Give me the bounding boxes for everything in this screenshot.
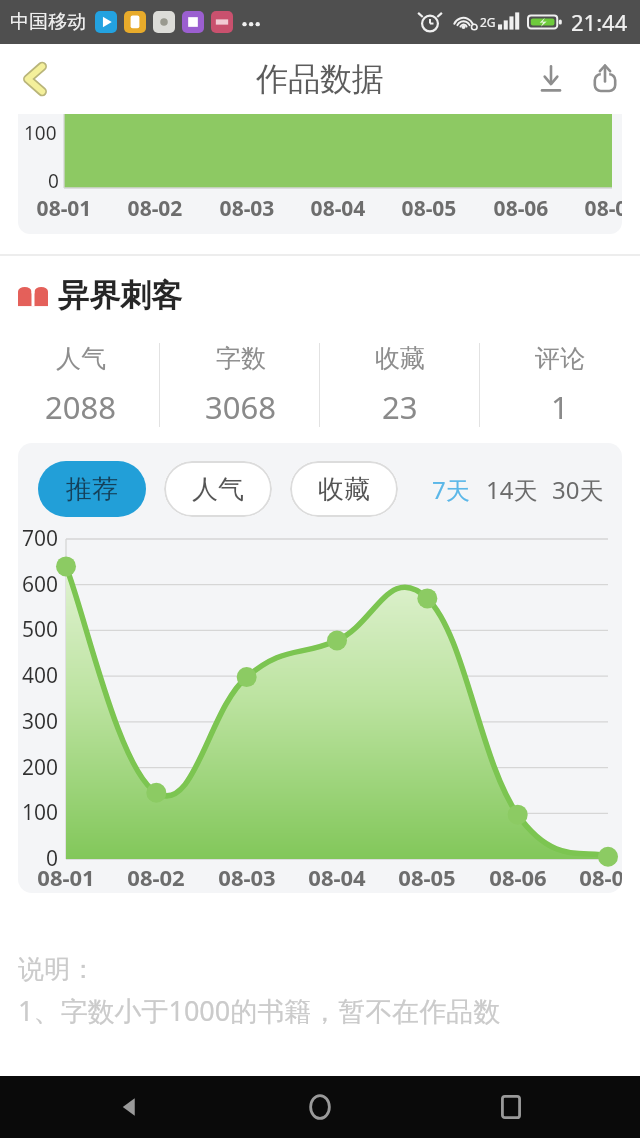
button[interactable]: 100 <box>18 114 622 234</box>
button[interactable]: 7天 <box>432 473 470 506</box>
staticText: 评论 <box>535 343 585 374</box>
button[interactable]: Back <box>100 1078 158 1136</box>
staticText: 08-02 <box>119 194 191 223</box>
button[interactable]: 0 <box>18 531 622 893</box>
staticText: 400 <box>18 661 58 690</box>
staticText: 1、字数小于1000的书籍，暂不在作品数 <box>18 992 501 1029</box>
staticText: 30天 <box>552 473 604 506</box>
staticText: 08-03 <box>207 862 287 892</box>
button[interactable]: 异界刺客 <box>18 276 640 315</box>
staticText: 200 <box>18 753 58 782</box>
staticText: 08-01 <box>26 862 106 892</box>
staticText: 08-05 <box>393 194 465 223</box>
staticText: 收藏 <box>318 473 370 506</box>
button[interactable]: Recent apps <box>482 1078 540 1136</box>
staticText: 08-06 <box>485 194 557 223</box>
staticText: 异界刺客 <box>58 276 182 315</box>
staticText: 08-01 <box>28 194 100 223</box>
staticText: 人气 <box>56 343 106 374</box>
button[interactable]: Home <box>291 1078 349 1136</box>
staticText: 300 <box>18 707 58 736</box>
staticText: 字数 <box>216 343 266 374</box>
staticText: 23 <box>382 386 418 428</box>
button[interactable]: Download <box>524 52 578 106</box>
staticText: 08-06 <box>478 862 558 892</box>
button[interactable]: 14天 <box>486 473 538 506</box>
staticText: 3068 <box>205 386 276 428</box>
staticText: 08-02 <box>116 862 196 892</box>
staticText: 08-07 <box>576 194 622 223</box>
staticText: 7天 <box>432 473 470 506</box>
staticText: 100 <box>24 120 57 146</box>
staticText: 500 <box>18 615 58 644</box>
staticText: 08-03 <box>211 194 283 223</box>
button[interactable]: 30天 <box>552 473 604 506</box>
staticText: 100 <box>18 798 58 827</box>
staticText: 700 <box>18 524 58 553</box>
staticText: 21:44 <box>571 7 628 37</box>
button[interactable]: 人气 <box>164 461 272 517</box>
staticText: 14天 <box>486 473 538 506</box>
staticText: 08-05 <box>387 862 467 892</box>
staticText: 600 <box>18 570 58 599</box>
staticText: 1 <box>551 386 569 428</box>
staticText: 0 <box>48 168 59 194</box>
staticText: 08-04 <box>302 194 374 223</box>
staticText: 2088 <box>45 386 116 428</box>
button[interactable]: 推荐 <box>38 461 146 517</box>
staticText: 08-07 <box>568 862 622 892</box>
staticText: 08-04 <box>297 862 377 892</box>
staticText: 人气 <box>192 473 244 506</box>
staticText: 0 <box>18 844 58 873</box>
staticText: 收藏 <box>375 343 425 374</box>
button[interactable]: Share <box>578 52 632 106</box>
staticText: 中国移动 <box>10 10 86 34</box>
staticText: 作品数据 <box>256 59 384 99</box>
staticText: 说明： <box>18 953 96 986</box>
staticText: 2G <box>480 14 496 30</box>
staticText: 推荐 <box>66 473 118 506</box>
button[interactable]: 收藏 <box>290 461 398 517</box>
button[interactable]: Back <box>6 50 64 108</box>
